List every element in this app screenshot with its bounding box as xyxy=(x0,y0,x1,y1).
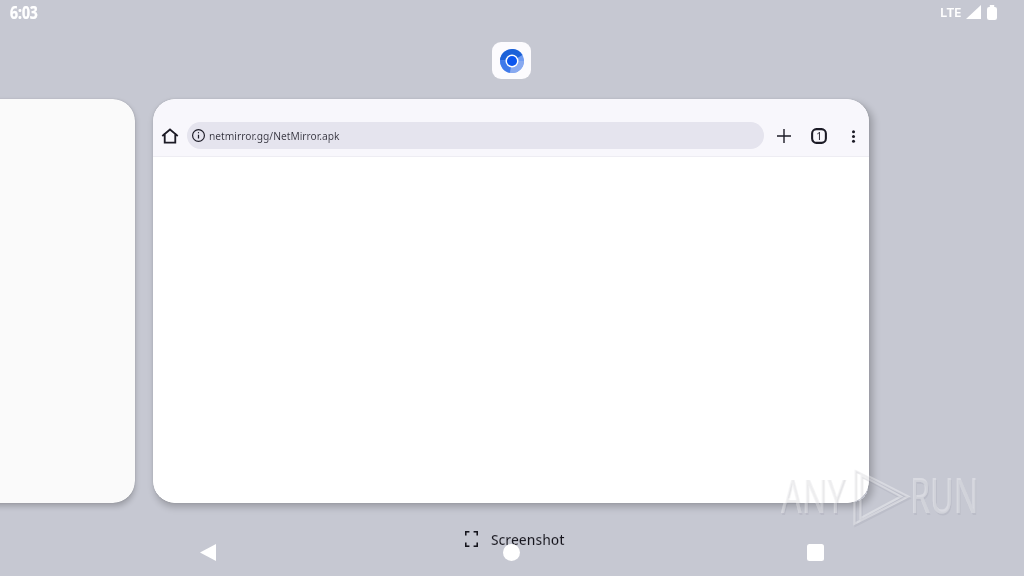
button[interactable] xyxy=(0,99,135,503)
staticText: LTE xyxy=(940,3,962,21)
button[interactable]: Chrome app icon xyxy=(492,42,531,79)
button[interactable]: Tabs, 1 open xyxy=(802,119,836,153)
button[interactable]: Home xyxy=(153,99,869,503)
staticText: Screenshot xyxy=(491,529,565,549)
button[interactable]: Screenshot xyxy=(465,529,571,549)
staticText: ANY xyxy=(783,463,847,503)
button[interactable]: netmirror.gg/NetMirror.apk xyxy=(187,122,764,149)
button[interactable]: Home xyxy=(503,544,520,561)
staticText: 6:03 xyxy=(10,1,38,24)
staticText: ANY xyxy=(781,461,845,528)
staticText: RUN xyxy=(910,461,979,528)
staticText: RUN xyxy=(911,463,980,530)
staticText: ANY xyxy=(782,461,846,503)
button[interactable]: Back xyxy=(191,535,225,569)
staticText: netmirror.gg/NetMirror.apk xyxy=(209,128,340,143)
button[interactable]: Home xyxy=(153,119,187,153)
button[interactable]: Recent apps xyxy=(798,535,832,569)
button[interactable]: New tab xyxy=(767,119,801,153)
staticText: 1 xyxy=(816,129,822,143)
staticText: ANY xyxy=(782,463,846,530)
button[interactable]: More options xyxy=(836,119,869,153)
